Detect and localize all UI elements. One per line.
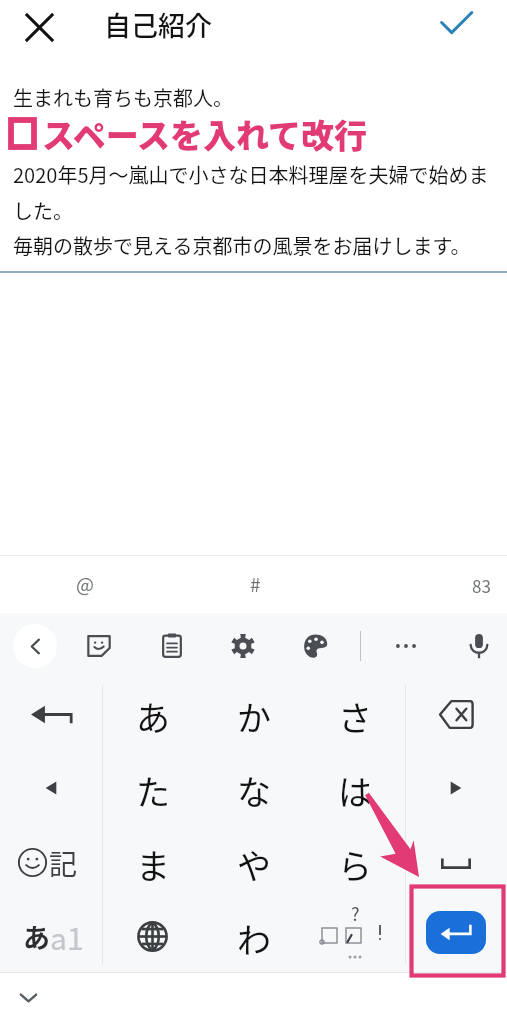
staticText: ま [136,840,170,889]
staticText: ら [338,840,372,889]
button[interactable]: や [203,824,304,898]
staticText: ? [351,900,360,926]
button[interactable]: Change language [102,898,203,972]
button[interactable]: Undo [0,677,102,750]
button[interactable]: Hide keyboard [7,977,49,1019]
button[interactable]: Enter [405,898,507,972]
staticText: た [136,766,170,815]
staticText: 2020年5月〜嵐山で小さな日本料理屋を夫婦で始めました。 [13,160,493,225]
staticText: わ [237,914,271,963]
button[interactable]: Theme [293,624,337,668]
button[interactable]: Clipboard [150,624,194,668]
button[interactable]: Cursor left [0,750,102,824]
button[interactable]: た [102,750,203,824]
staticText: 自己紹介 [104,5,212,44]
staticText: @ [76,570,94,598]
staticText: あ [136,692,170,741]
button[interactable]: な [203,750,304,824]
button[interactable]: Punctuation [304,898,405,972]
button[interactable]: Close [15,3,63,51]
staticText: 生まれも育ちも京都人。 [13,83,233,112]
staticText: 83 [472,573,491,598]
button[interactable]: Switch input mode [0,898,102,972]
button[interactable]: # [200,555,310,613]
button[interactable]: More options [384,624,428,668]
button[interactable]: わ [203,898,304,972]
staticText: さ [338,692,372,741]
button[interactable]: Voice input [457,624,501,668]
staticText: や [237,840,271,889]
button[interactable]: は [304,750,405,824]
staticText: 毎朝の散歩で見える京都市の風景をお届けします。 [13,231,493,260]
staticText: か [237,692,271,741]
staticText: あ [23,917,50,956]
staticText: は [338,766,372,815]
button[interactable]: Delete [405,677,507,750]
button[interactable]: か [203,677,304,750]
staticText: スペースを入れて改行 [42,110,368,158]
button[interactable]: あ [102,677,203,750]
button[interactable]: ま [102,824,203,898]
button[interactable]: さ [304,677,405,750]
button[interactable]: Cursor right [405,750,507,824]
staticText: a1 [50,915,84,958]
button[interactable]: @ [30,555,140,613]
button[interactable]: Back [13,624,57,668]
button[interactable]: ら [304,824,405,898]
button[interactable]: Settings [221,624,265,668]
staticText: な [237,766,271,815]
staticText: 記 [49,843,78,884]
staticText: # [250,570,261,598]
button[interactable]: Emoji and symbols [0,824,102,898]
button[interactable]: Done [434,2,478,46]
button[interactable]: Stickers [77,624,121,668]
button[interactable]: Space [405,824,507,898]
